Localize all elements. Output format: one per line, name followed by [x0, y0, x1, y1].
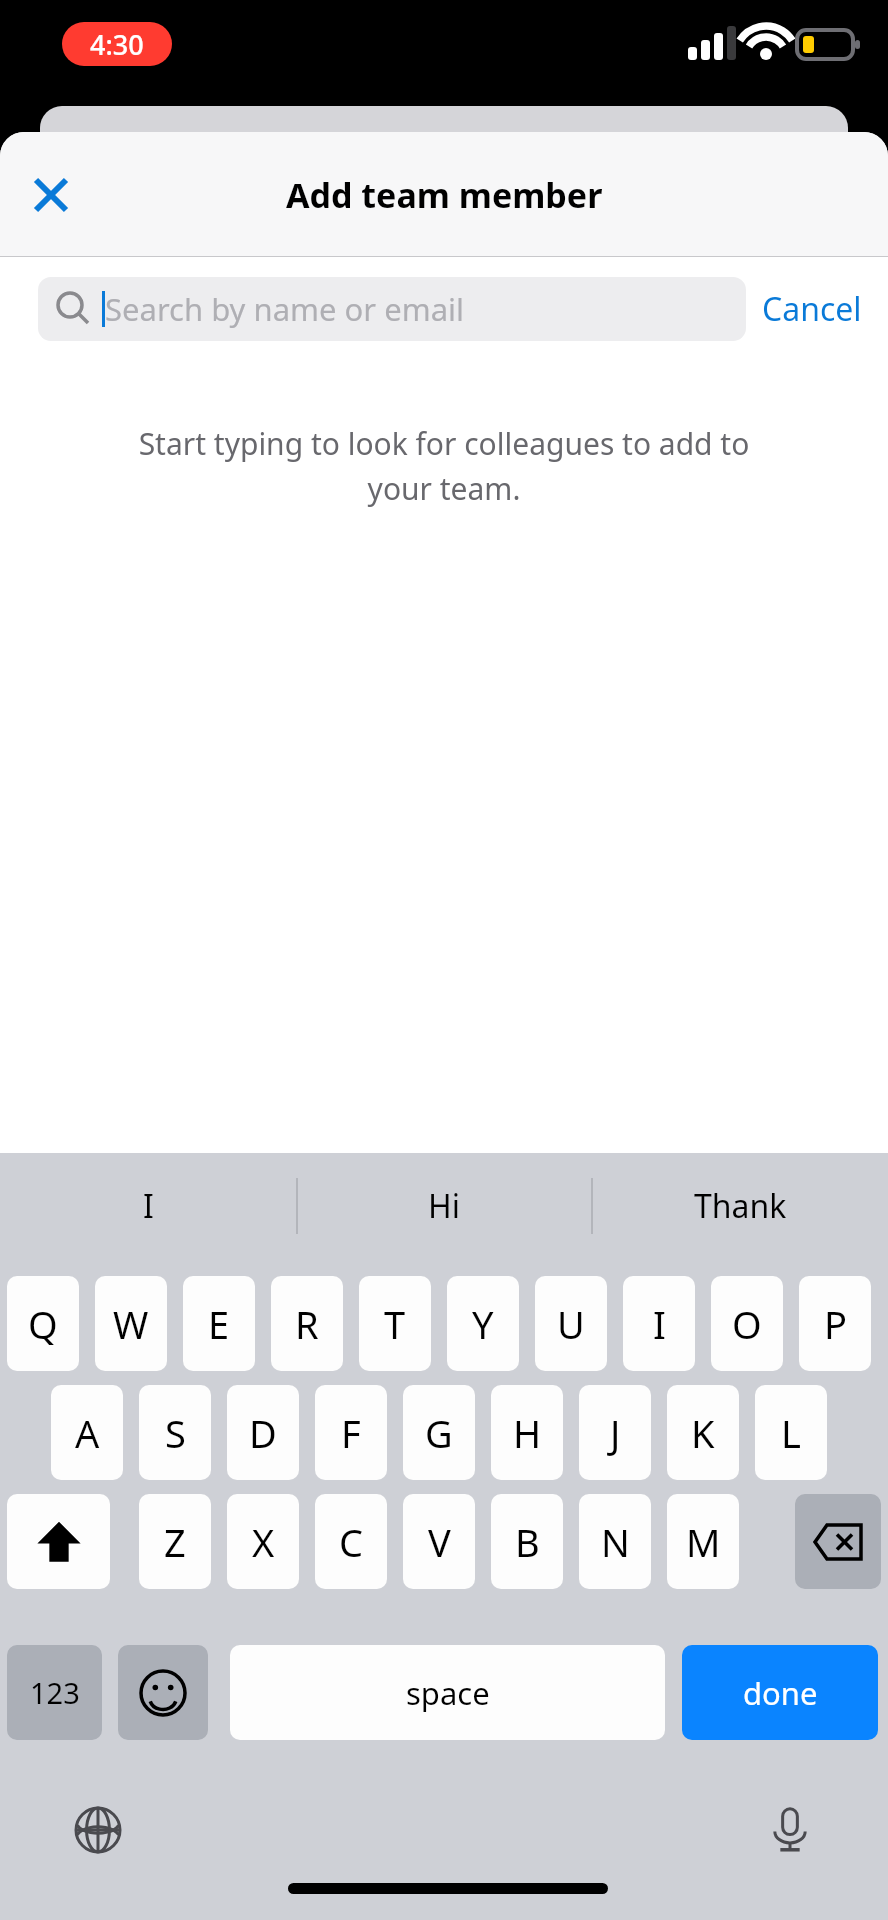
button[interactable]: I	[623, 1276, 695, 1371]
staticText: J	[610, 1407, 621, 1459]
staticText: U	[557, 1298, 585, 1350]
button[interactable]: T	[359, 1276, 431, 1371]
staticText: Q	[28, 1298, 58, 1350]
button[interactable]: P	[799, 1276, 871, 1371]
button[interactable]: Hi	[296, 1153, 592, 1258]
button[interactable]: D	[227, 1385, 299, 1480]
button[interactable]: K	[667, 1385, 739, 1480]
staticText: Cancel	[762, 287, 862, 331]
staticText: S	[165, 1407, 186, 1459]
staticText: D	[249, 1407, 277, 1459]
button[interactable]: Backspace	[795, 1494, 881, 1589]
button[interactable]: Q	[7, 1276, 79, 1371]
staticText: C	[339, 1516, 364, 1568]
staticText: A	[75, 1407, 100, 1459]
button[interactable]: Switch keyboard	[58, 1790, 138, 1870]
button[interactable]: A	[51, 1385, 123, 1480]
button[interactable]: L	[755, 1385, 827, 1480]
button[interactable]: X	[227, 1494, 299, 1589]
button[interactable]: Shift	[7, 1494, 110, 1589]
button[interactable]: 123	[7, 1645, 102, 1740]
button[interactable]: Y	[447, 1276, 519, 1371]
button[interactable]: H	[491, 1385, 563, 1480]
staticText: Thank	[694, 1184, 787, 1228]
button[interactable]: V	[403, 1494, 475, 1589]
staticText: G	[425, 1407, 453, 1459]
staticText: N	[601, 1516, 630, 1568]
button[interactable]: U	[535, 1276, 607, 1371]
staticText: Y	[472, 1298, 494, 1350]
button[interactable]: F	[315, 1385, 387, 1480]
staticText: 4:30	[90, 26, 144, 63]
staticText: F	[341, 1407, 361, 1459]
staticText: E	[208, 1298, 230, 1350]
staticText: B	[515, 1516, 540, 1568]
button[interactable]: G	[403, 1385, 475, 1480]
button[interactable]: Close	[18, 162, 84, 228]
staticText: I	[143, 1184, 154, 1228]
button[interactable]: Z	[139, 1494, 211, 1589]
button[interactable]: Search by name or email	[38, 277, 746, 341]
staticText: Add team member	[286, 172, 603, 218]
staticText: 123	[30, 1673, 80, 1712]
button[interactable]: R	[271, 1276, 343, 1371]
staticText: Hi	[428, 1184, 460, 1228]
button[interactable]: Emoji	[118, 1645, 208, 1740]
button[interactable]: Cancel	[762, 287, 862, 331]
button[interactable]: N	[579, 1494, 651, 1589]
staticText: M	[686, 1516, 721, 1568]
button[interactable]: Thank	[592, 1153, 888, 1258]
button[interactable]: S	[139, 1385, 211, 1480]
button[interactable]: M	[667, 1494, 739, 1589]
button[interactable]: J	[579, 1385, 651, 1480]
staticText: I	[653, 1298, 666, 1350]
staticText: O	[732, 1298, 762, 1350]
button[interactable]: I	[0, 1153, 296, 1258]
staticText: done	[743, 1672, 818, 1714]
button[interactable]: W	[95, 1276, 167, 1371]
staticText: L	[781, 1407, 801, 1459]
staticText: space	[406, 1672, 490, 1714]
button[interactable]: C	[315, 1494, 387, 1589]
staticText: V	[428, 1516, 451, 1568]
staticText: P	[824, 1298, 847, 1350]
button[interactable]: O	[711, 1276, 783, 1371]
staticText: Start typing to look for colleagues to a…	[104, 423, 784, 508]
button[interactable]: B	[491, 1494, 563, 1589]
button[interactable]: done	[682, 1645, 878, 1740]
staticText: T	[384, 1298, 406, 1350]
button[interactable]: E	[183, 1276, 255, 1371]
staticText: W	[113, 1298, 149, 1350]
staticText: H	[513, 1407, 542, 1459]
staticText: K	[691, 1407, 715, 1459]
staticText: R	[295, 1298, 319, 1350]
button[interactable]: Dictation	[750, 1790, 830, 1870]
button[interactable]: space	[230, 1645, 665, 1740]
staticText: X	[252, 1516, 275, 1568]
staticText: Search by name or email	[105, 288, 465, 330]
staticText: Z	[164, 1516, 186, 1568]
